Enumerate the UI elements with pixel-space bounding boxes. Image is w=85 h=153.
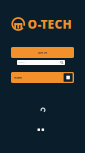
- staticText: Search: [19, 62, 25, 63]
- button[interactable]: LOG IN: [11, 47, 74, 58]
- staticText: O-TECH: [28, 16, 72, 32]
- button[interactable]: Menu: [11, 72, 74, 83]
- staticText: LOG IN: [38, 51, 47, 54]
- button[interactable]: Search: [17, 60, 65, 65]
- staticText: MENU: [14, 76, 22, 79]
